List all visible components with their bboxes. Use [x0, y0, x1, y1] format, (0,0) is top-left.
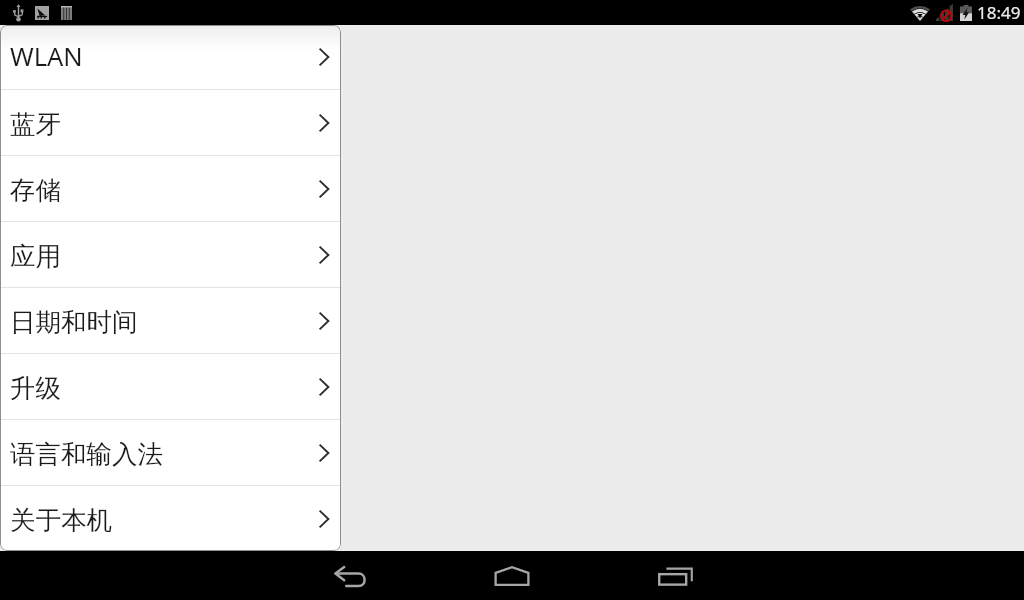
button[interactable]: 语言和输入法 [0, 420, 341, 485]
staticText: 语言和输入法 [10, 438, 163, 470]
button[interactable]: Back [321, 552, 381, 600]
button[interactable]: 应用 [0, 222, 341, 287]
staticText: 日期和时间 [10, 306, 138, 338]
button[interactable]: 升级 [0, 354, 341, 419]
staticText: 升级 [10, 372, 61, 404]
button[interactable]: 日期和时间 [0, 288, 341, 353]
button[interactable]: 存储 [0, 156, 341, 221]
staticText: 18:49 [977, 1, 1021, 24]
button[interactable]: Home [482, 551, 542, 600]
button[interactable]: 蓝牙 [0, 90, 341, 155]
staticText: 蓝牙 [10, 108, 61, 140]
staticText: 关于本机 [10, 504, 112, 536]
button[interactable]: 关于本机 [0, 486, 341, 551]
staticText: 应用 [10, 240, 61, 272]
staticText: 存储 [10, 174, 61, 206]
button[interactable]: Recent apps [645, 551, 705, 600]
staticText: WLAN [10, 39, 83, 74]
button[interactable]: WLAN [0, 25, 341, 89]
